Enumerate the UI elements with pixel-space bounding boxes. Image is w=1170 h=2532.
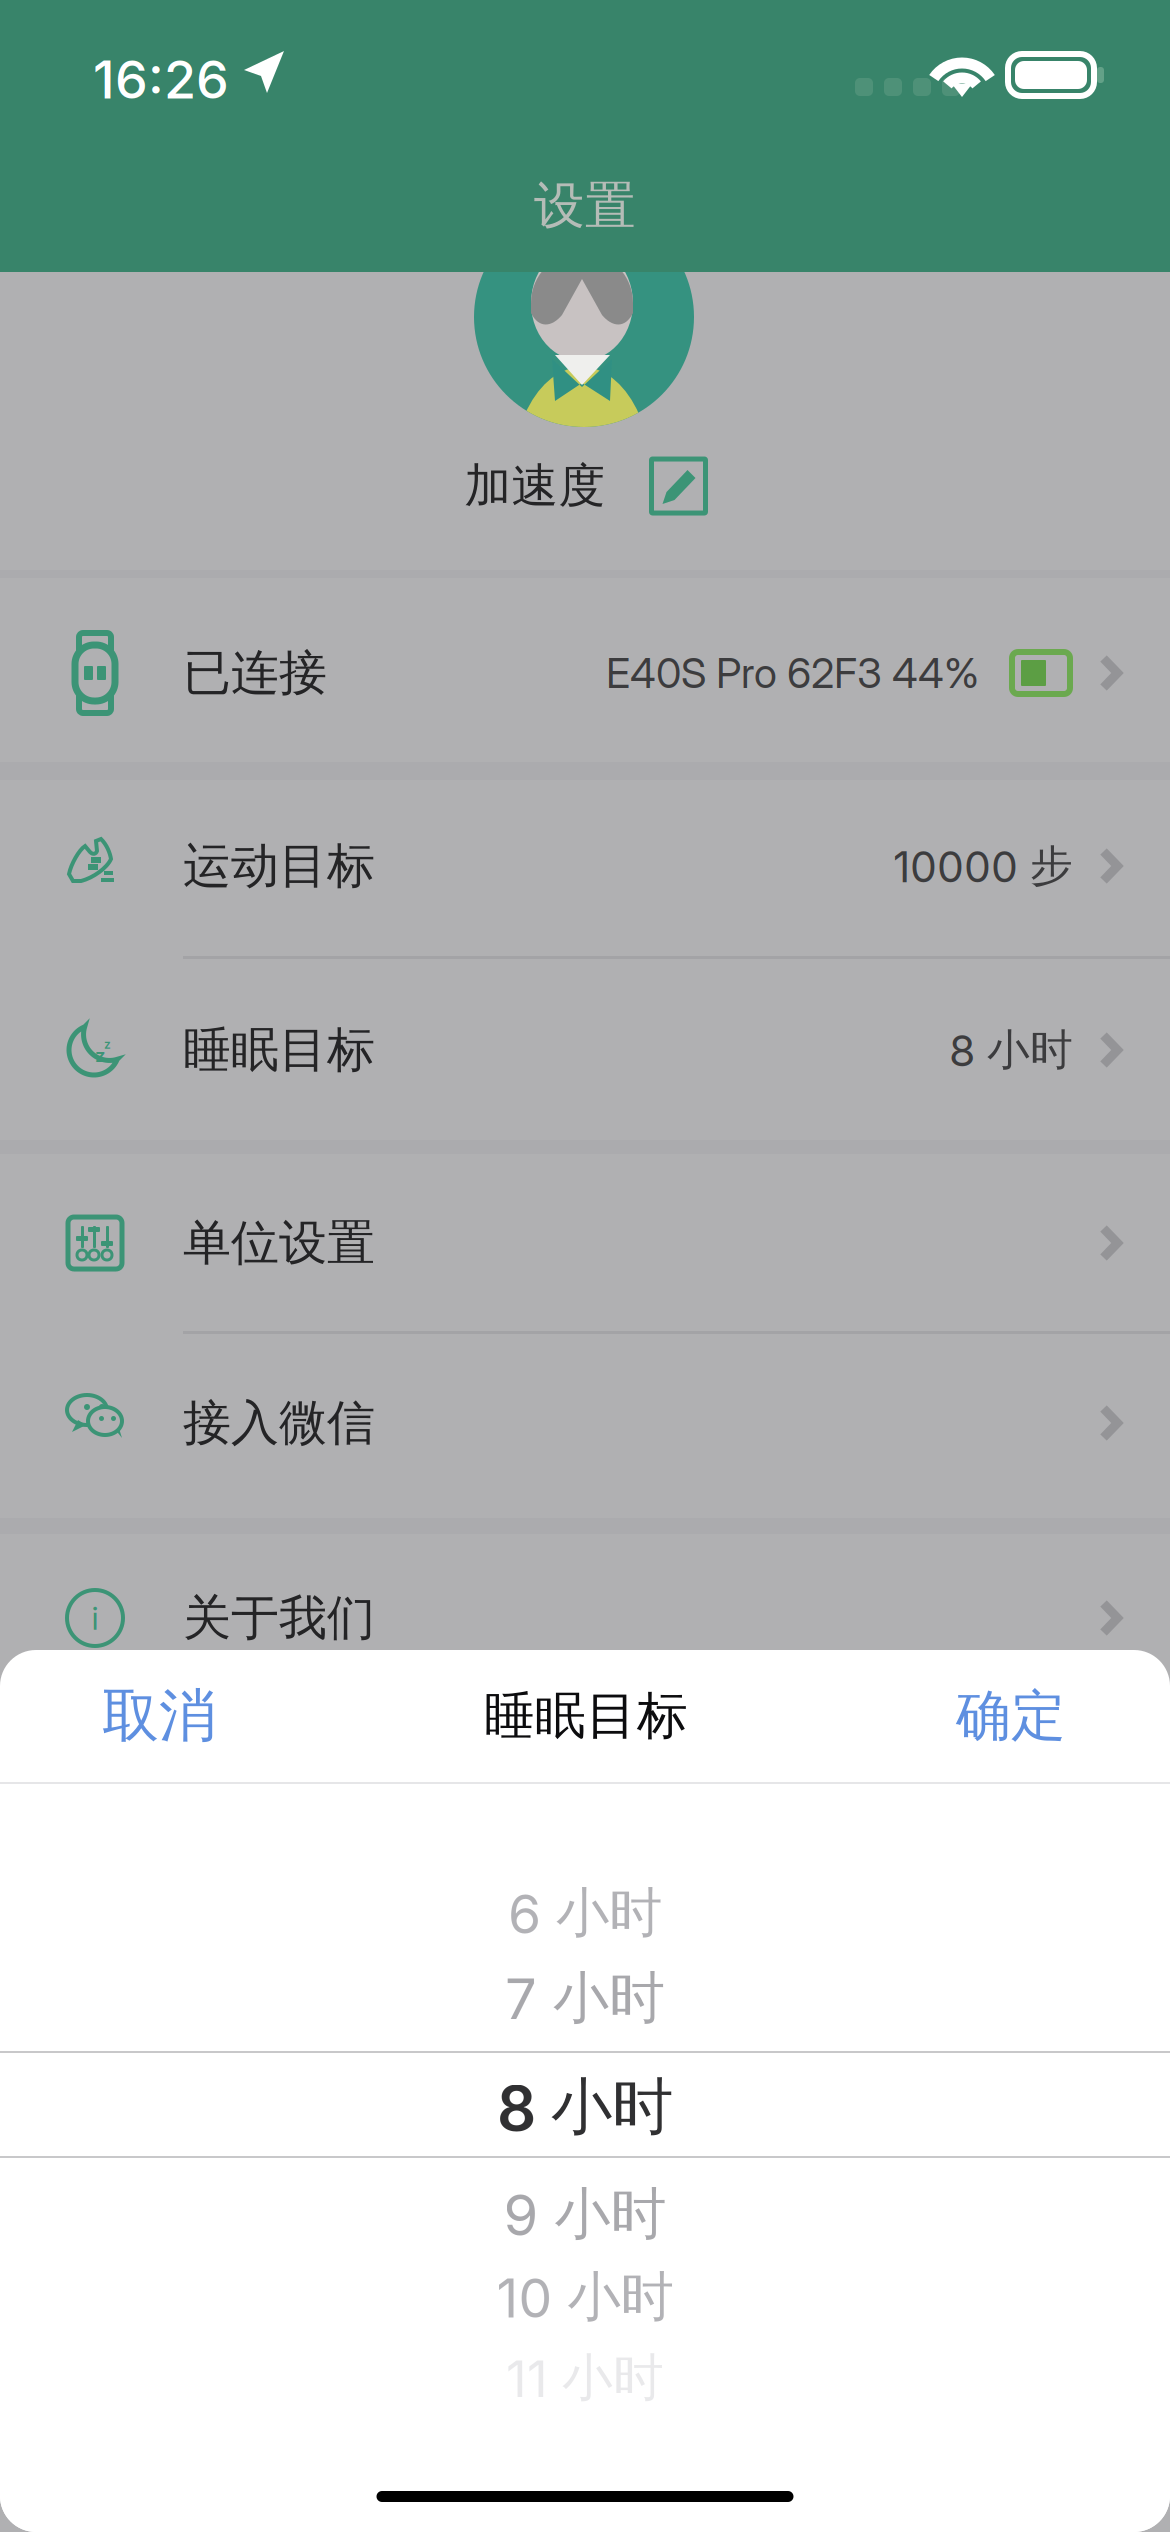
button[interactable]: 运动目标 (0, 778, 1170, 954)
staticText: 加速度 (464, 457, 605, 515)
staticText: E40S Pro 62F3 44% (606, 648, 979, 698)
staticText: 睡眠目标 (484, 1684, 688, 1748)
button[interactable]: 确定 (916, 1650, 1170, 1782)
staticText: 已连接 (183, 643, 327, 703)
staticText: z (104, 1037, 111, 1051)
staticText: 关于我们 (183, 1588, 375, 1648)
staticText: 取消 (102, 1680, 216, 1752)
staticText: 设置 (534, 174, 636, 238)
staticText: 确定 (956, 1682, 1066, 1750)
staticText: z (95, 1044, 106, 1067)
staticText: 睡眠目标 (183, 1020, 375, 1080)
staticText: i (91, 1599, 98, 1637)
staticText: 7 小时 (505, 1963, 665, 2033)
button[interactable]: 已连接 (0, 581, 1170, 765)
button[interactable]: 单位设置 (0, 1155, 1170, 1331)
staticText: 6 小时 (508, 1879, 662, 1947)
staticText: 16:26 (93, 48, 229, 111)
button[interactable]: 取消 (0, 1650, 256, 1782)
button[interactable]: z (0, 962, 1170, 1138)
staticText: 10000 步 (893, 839, 1073, 893)
staticText: 8 小时 (497, 2068, 673, 2146)
button[interactable]: 接入微信 (0, 1335, 1170, 1511)
staticText: 运动目标 (183, 836, 375, 896)
staticText: 9 小时 (503, 2179, 666, 2249)
staticText: 接入微信 (183, 1393, 375, 1453)
staticText: 单位设置 (183, 1213, 375, 1273)
staticText: 8 小时 (949, 1023, 1073, 1077)
staticText: 11 小时 (506, 2346, 664, 2410)
button[interactable]: Edit profile name (651, 459, 705, 513)
button[interactable]: i (0, 1530, 1170, 1706)
staticText: 10 小时 (496, 2263, 673, 2331)
